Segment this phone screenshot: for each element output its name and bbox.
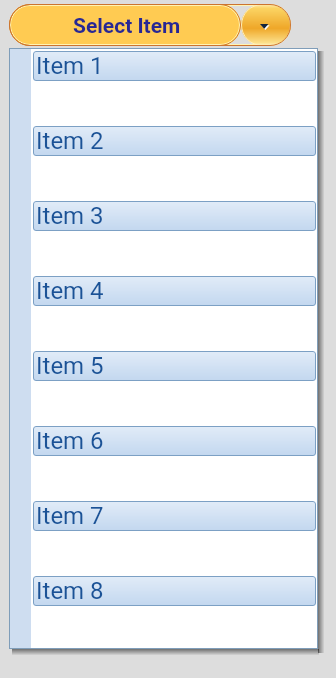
button[interactable]: Item 3 bbox=[33, 201, 316, 231]
staticText: Item 1 bbox=[36, 52, 104, 80]
button[interactable]: Item 6 bbox=[33, 426, 316, 456]
button[interactable]: Item 7 bbox=[33, 501, 316, 531]
button[interactable]: Item 4 bbox=[33, 276, 316, 306]
staticText: Item 6 bbox=[36, 427, 104, 455]
button[interactable]: Select Item bbox=[9, 4, 241, 46]
button[interactable]: Item 8 bbox=[33, 576, 316, 606]
staticText: Item 3 bbox=[36, 202, 104, 230]
staticText: Item 4 bbox=[36, 277, 104, 305]
button[interactable]: Item 1 bbox=[33, 51, 316, 81]
staticText: Select Item bbox=[73, 14, 181, 39]
staticText: Item 7 bbox=[36, 502, 104, 530]
button[interactable]: Item 2 bbox=[33, 126, 316, 156]
button[interactable]: Item 5 bbox=[33, 351, 316, 381]
button[interactable]: Show drop-down list bbox=[241, 4, 291, 46]
staticText: Item 5 bbox=[36, 352, 104, 380]
staticText: Item 2 bbox=[36, 127, 104, 155]
staticText: Item 8 bbox=[36, 577, 104, 605]
